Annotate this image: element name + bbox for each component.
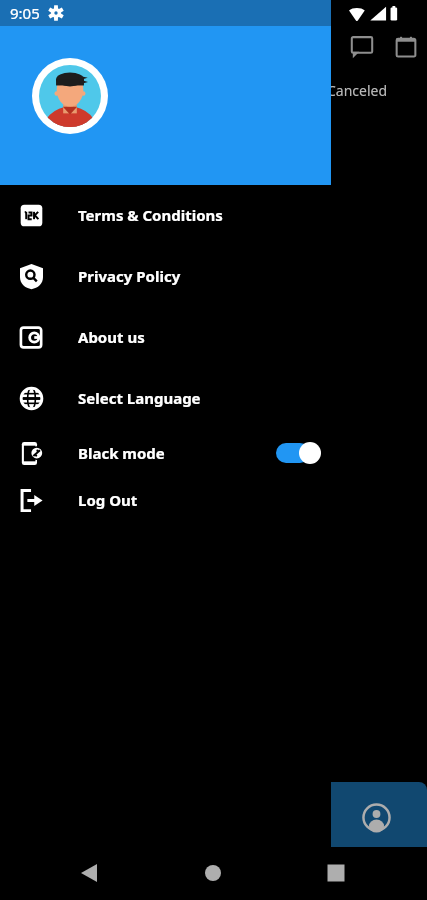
button[interactable]: Select Language	[0, 374, 331, 422]
button[interactable]: Messages	[345, 30, 379, 64]
button[interactable]: Terms & Conditions	[0, 191, 331, 239]
button[interactable]: Privacy Policy	[0, 252, 331, 300]
button[interactable]: Recents	[318, 855, 354, 891]
button[interactable]: Back	[71, 855, 107, 891]
staticText: 9:05	[10, 3, 40, 23]
staticText: Terms & Conditions	[78, 205, 223, 225]
button[interactable]: Black mode	[0, 429, 331, 477]
staticText: Black mode	[78, 443, 165, 463]
button[interactable]: Account	[331, 782, 427, 847]
staticText: Log Out	[78, 490, 138, 510]
button[interactable]: Log Out	[0, 476, 331, 524]
button[interactable]: Profile picture	[32, 58, 108, 134]
button[interactable]: Home	[195, 855, 231, 891]
staticText: Select Language	[78, 388, 201, 408]
staticText: About us	[78, 327, 145, 347]
staticText: Canceled	[327, 81, 388, 100]
button[interactable]: Black mode toggle	[276, 436, 332, 470]
button[interactable]: About us	[0, 313, 331, 361]
button[interactable]: Calendar	[389, 30, 423, 64]
staticText: Privacy Policy	[78, 266, 181, 286]
